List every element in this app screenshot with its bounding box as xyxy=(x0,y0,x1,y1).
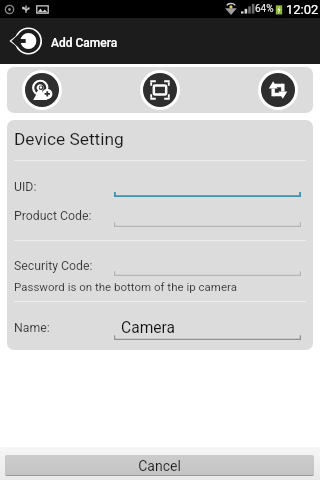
button[interactable]: Scan QR code xyxy=(139,69,181,111)
other: Navigate up xyxy=(8,24,42,58)
staticText: Add Camera xyxy=(51,36,118,50)
button[interactable]: Refresh device list xyxy=(257,69,299,111)
staticText: Name: xyxy=(14,321,50,335)
button[interactable]: Add camera xyxy=(21,69,63,111)
staticText: 12:02 xyxy=(286,2,319,17)
staticText: Product Code: xyxy=(14,209,92,223)
staticText: Camera xyxy=(121,319,176,337)
staticText: Security Code: xyxy=(14,259,93,273)
staticText: 64% xyxy=(255,3,274,15)
staticText: Cancel xyxy=(138,458,181,474)
button[interactable]: Cancel xyxy=(5,455,314,476)
staticText: Password is on the bottom of the ip came… xyxy=(14,280,237,293)
staticText: Device Setting xyxy=(14,129,124,149)
staticText: UID: xyxy=(14,180,37,194)
button[interactable]: Navigate up xyxy=(0,18,320,64)
